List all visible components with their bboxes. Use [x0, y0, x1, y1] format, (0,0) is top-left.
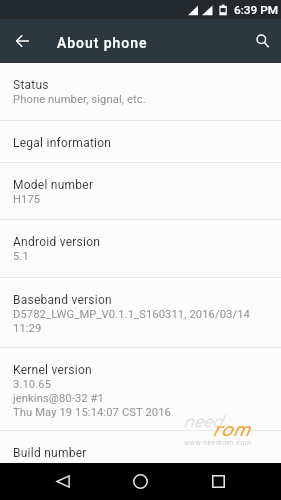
staticText: 6:39 PM — [234, 3, 279, 17]
staticText: 3.10.65 jenkins@80-32 #1 Thu May 19 15:1… — [13, 378, 171, 418]
button[interactable]: Model number — [0, 163, 281, 219]
button[interactable]: Build number — [0, 431, 281, 463]
staticText: H175 — [13, 193, 41, 206]
button[interactable]: Android version — [0, 220, 281, 277]
staticText: Status — [13, 78, 49, 92]
staticText: Android version — [13, 235, 101, 249]
staticText: rom — [212, 420, 250, 440]
staticText: Phone number, signal, etc. — [13, 93, 146, 106]
staticText: 5.1 — [13, 250, 29, 263]
button[interactable]: Baseband version — [0, 278, 281, 347]
staticText: Kernel version — [13, 363, 92, 377]
button[interactable]: Back — [40, 463, 86, 500]
staticText: need — [183, 414, 223, 431]
staticText: Legal information — [13, 136, 112, 150]
staticText: D5782_LWG_MP_V0.1.1_S160311, 2016/03/14 … — [13, 308, 250, 334]
button[interactable]: Home — [117, 463, 163, 500]
button[interactable]: Recent apps — [195, 463, 241, 500]
staticText: Model number — [13, 178, 94, 192]
button[interactable]: Search — [241, 19, 281, 63]
button[interactable]: Legal information — [0, 121, 281, 162]
button[interactable]: Kernel version — [0, 348, 281, 430]
staticText: www.needrom.com — [184, 438, 252, 446]
staticText: About phone — [57, 35, 148, 51]
button[interactable]: Navigate up — [0, 19, 44, 63]
staticText: Baseband version — [13, 293, 112, 307]
staticText: Build number — [13, 446, 87, 460]
button[interactable]: Status — [0, 63, 281, 120]
